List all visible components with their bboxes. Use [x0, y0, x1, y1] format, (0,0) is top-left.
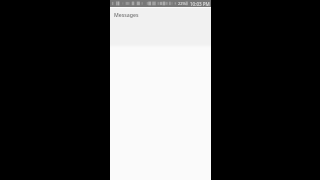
other: System status bar: [110, 0, 211, 7]
staticText: Messages: [114, 11, 139, 18]
staticText: 22%: [178, 1, 186, 6]
staticText: 10:03 PM: [190, 1, 210, 7]
